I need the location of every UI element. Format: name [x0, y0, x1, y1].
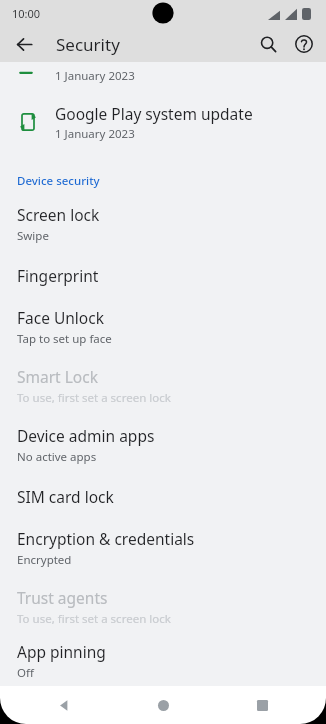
- button[interactable]: Home: [143, 686, 183, 724]
- staticText: Screen lock: [17, 204, 100, 225]
- button[interactable]: Search: [250, 26, 286, 62]
- button[interactable]: Smart Lock: [0, 356, 326, 415]
- button[interactable]: SIM card lock: [0, 474, 326, 518]
- staticText: 10:00: [12, 6, 41, 21]
- staticText: Device security: [17, 173, 100, 189]
- staticText: Device admin apps: [17, 425, 155, 446]
- button[interactable]: Screen lock: [0, 194, 326, 253]
- button[interactable]: Recents: [242, 686, 282, 724]
- staticText: Face Unlock: [17, 307, 104, 328]
- staticText: Security: [56, 33, 120, 56]
- staticText: Swipe: [17, 228, 49, 244]
- staticText: App pinning: [17, 641, 106, 662]
- staticText: No active apps: [17, 449, 97, 465]
- button[interactable]: Back: [6, 26, 42, 62]
- staticText: Encryption & credentials: [17, 528, 195, 549]
- staticText: Trust agents: [17, 587, 108, 608]
- staticText: To use, first set a screen lock: [17, 611, 171, 627]
- button[interactable]: Encryption & credentials: [0, 518, 326, 577]
- button[interactable]: Back: [44, 686, 84, 724]
- button[interactable]: Trust agents: [0, 577, 326, 636]
- button[interactable]: Face Unlock: [0, 297, 326, 356]
- button[interactable]: Device admin apps: [0, 415, 326, 474]
- button[interactable]: Help: [286, 26, 322, 62]
- staticText: Encrypted: [17, 552, 72, 568]
- staticText: Tap to set up face: [17, 331, 112, 347]
- staticText: To use, first set a screen lock: [17, 390, 171, 406]
- staticText: Off: [17, 665, 34, 681]
- staticText: Google Play system update: [55, 103, 253, 124]
- button[interactable]: Google Play system update: [0, 88, 326, 156]
- staticText: Smart Lock: [17, 366, 98, 387]
- staticText: Fingerprint: [17, 265, 99, 286]
- staticText: SIM card lock: [17, 486, 114, 507]
- staticText: 1 January 2023: [55, 126, 135, 142]
- button[interactable]: Fingerprint: [0, 253, 326, 297]
- button[interactable]: App pinning: [0, 636, 326, 686]
- staticText: 1 January 2023: [55, 68, 135, 84]
